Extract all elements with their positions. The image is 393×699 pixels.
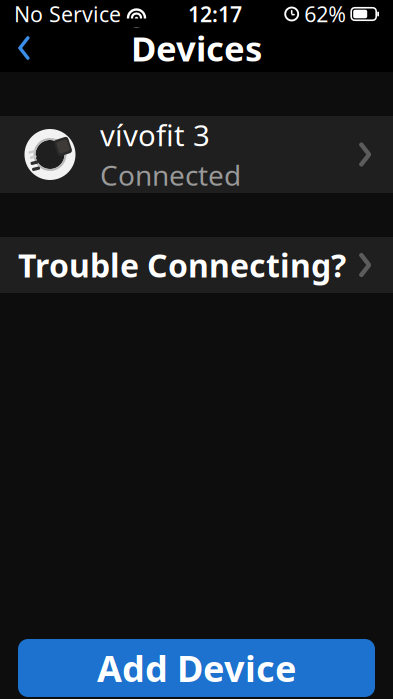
staticText: 62% — [304, 0, 346, 28]
staticText: No Service — [14, 0, 121, 28]
staticText: Trouble Connecting? — [18, 244, 346, 286]
staticText: Devices — [131, 25, 262, 71]
staticText: Add Device — [97, 644, 296, 692]
button[interactable]: Add Device — [18, 639, 375, 697]
staticText: vívofit 3 — [100, 115, 210, 154]
staticText: 12:17 — [188, 0, 242, 28]
button[interactable]: vívofit 3 — [0, 116, 393, 193]
button[interactable]: Trouble Connecting? — [0, 237, 393, 293]
button[interactable]: Back — [0, 26, 48, 70]
staticText: Connected — [100, 156, 241, 194]
